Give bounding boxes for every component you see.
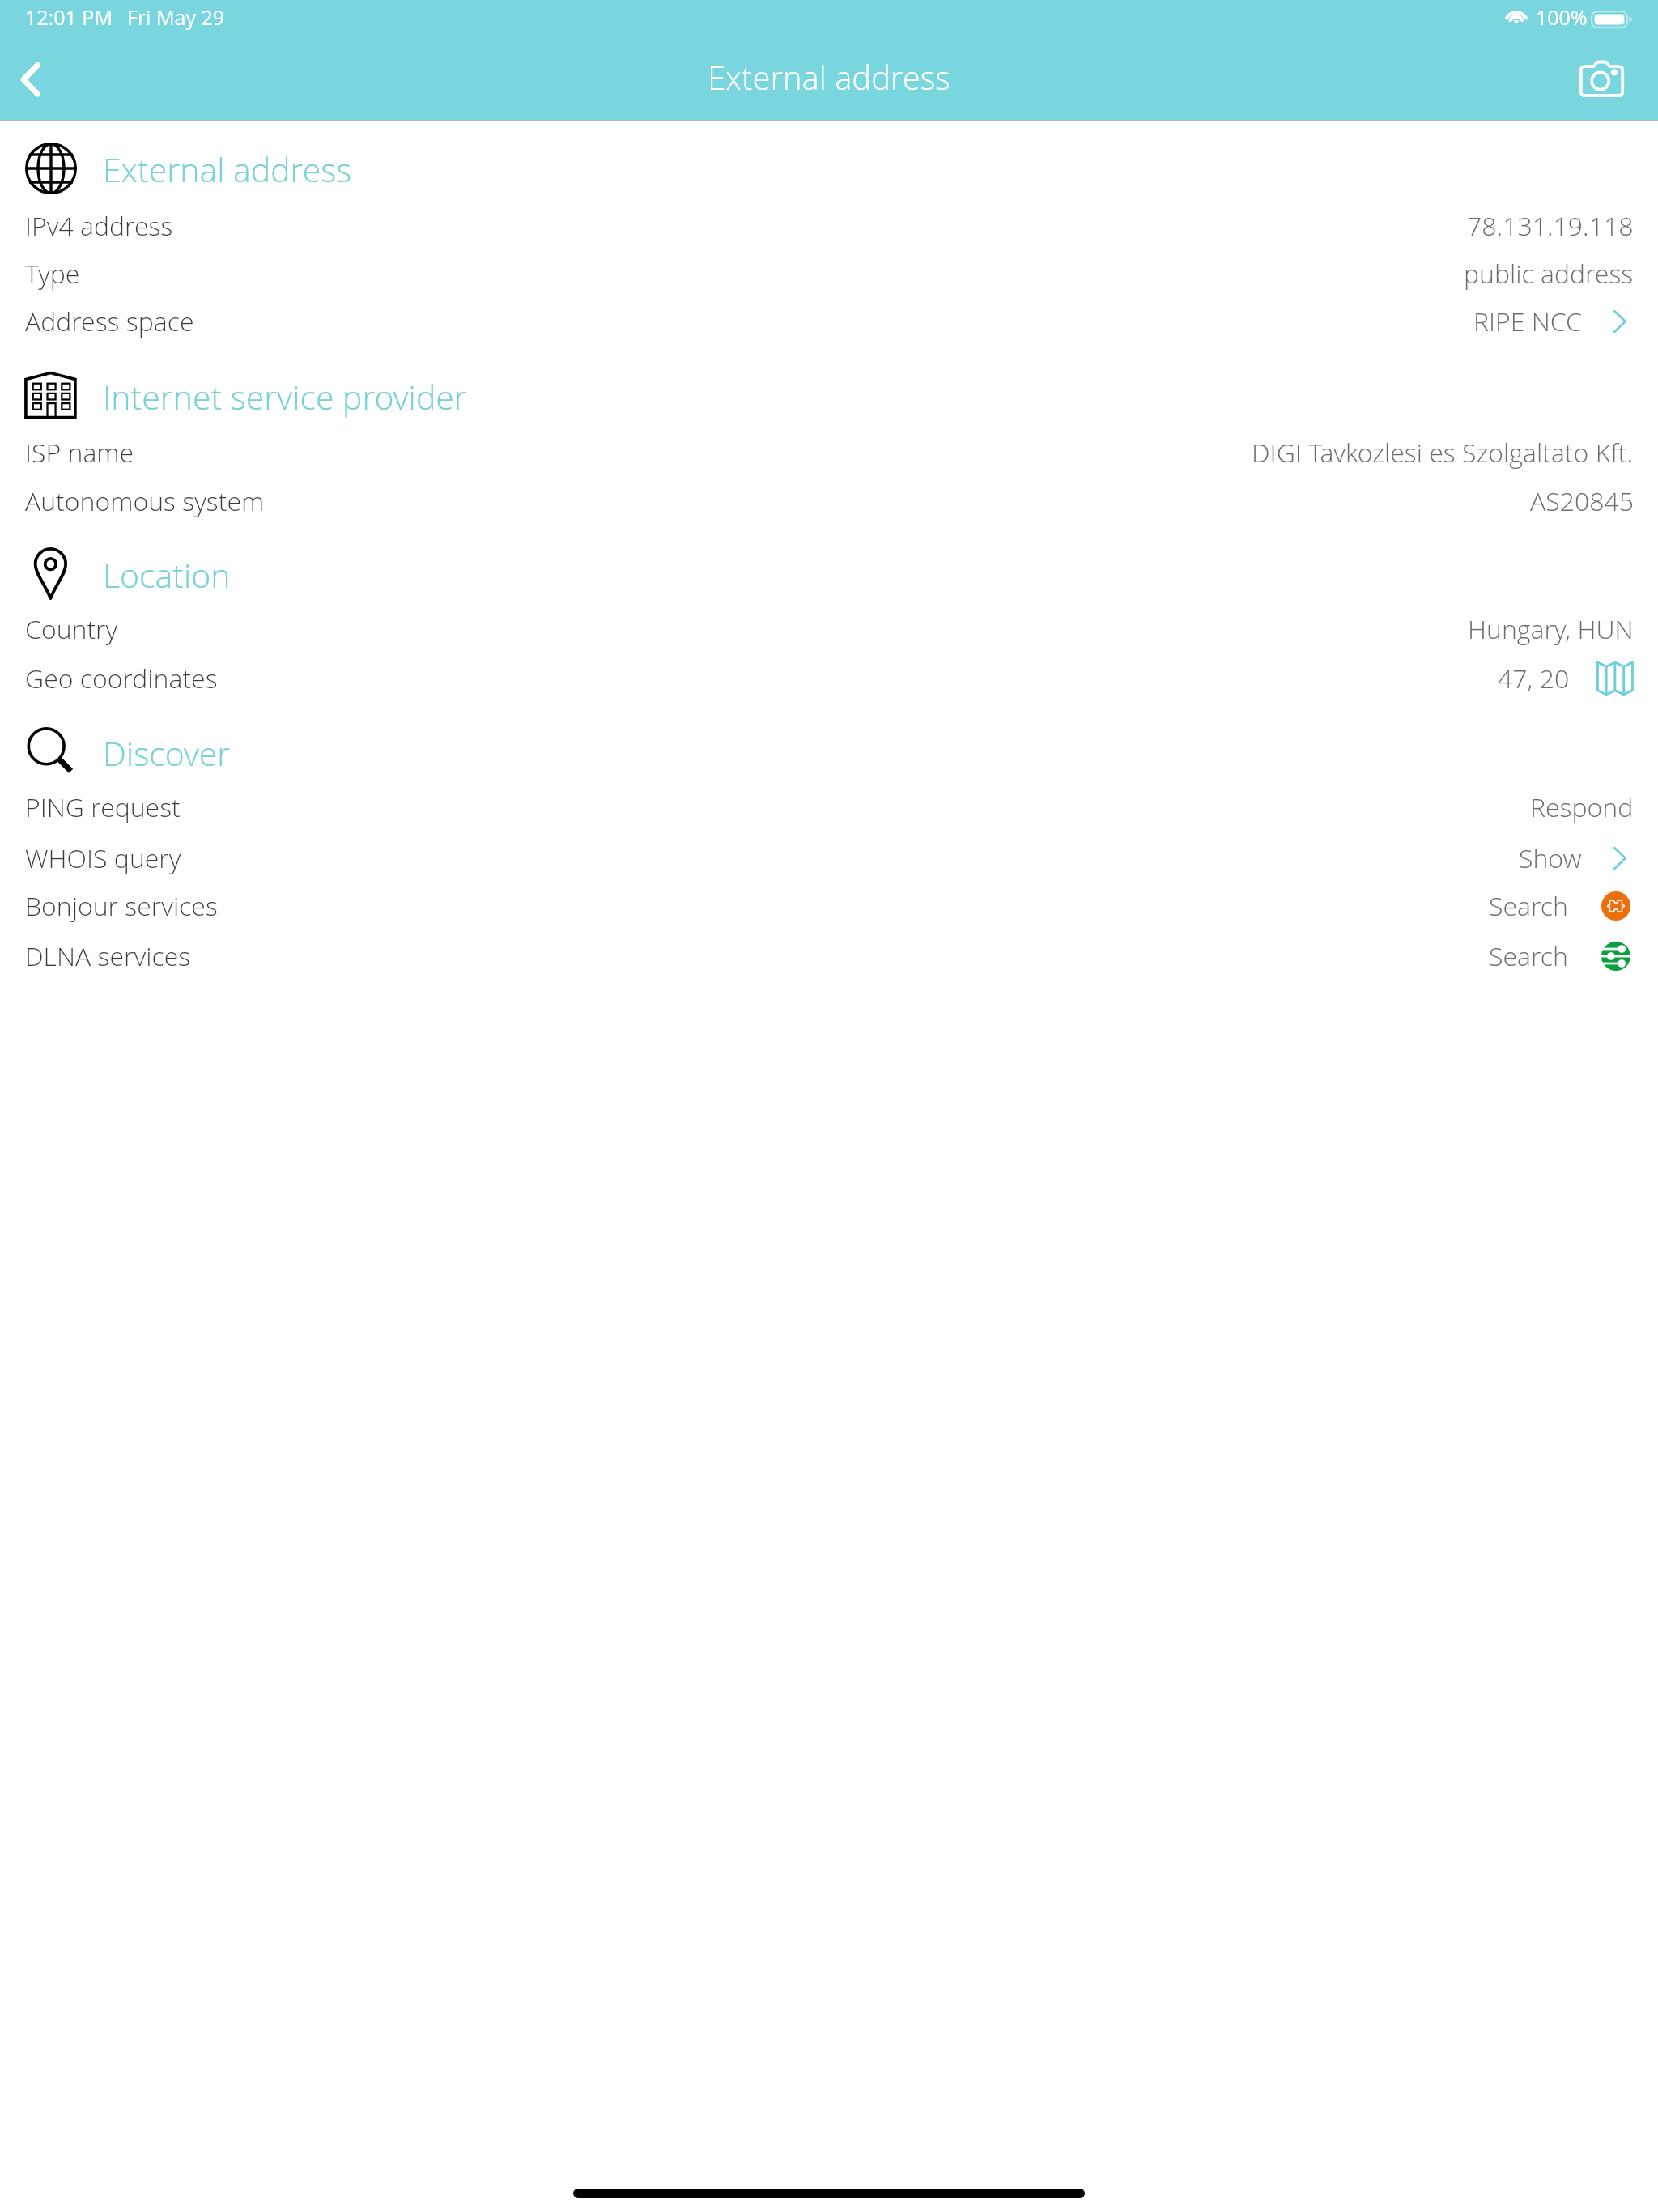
staticText: DLNA services <box>25 938 191 974</box>
staticText: Search <box>1489 888 1568 924</box>
button[interactable]: Address space <box>0 303 1658 340</box>
staticText: Search <box>1489 938 1568 974</box>
staticText: PING request <box>25 789 181 825</box>
staticText: RIPE NCC <box>1473 304 1582 339</box>
staticText: Discover <box>103 730 231 776</box>
button[interactable]: Country <box>0 610 1658 648</box>
staticText: public address <box>1464 256 1634 291</box>
staticText: Autonomous system <box>25 483 265 519</box>
staticText: 78.131.19.118 <box>1467 208 1634 244</box>
staticText: Bonjour services <box>25 888 218 924</box>
staticText: Country <box>25 611 118 647</box>
button[interactable]: PING request <box>0 789 1658 826</box>
button[interactable]: Back <box>0 44 74 118</box>
button[interactable]: WHOIS query <box>0 840 1658 877</box>
button[interactable]: Type <box>0 255 1658 292</box>
staticText: Location <box>103 552 231 598</box>
staticText: Hungary, HUN <box>1468 611 1634 647</box>
button[interactable]: ISP name <box>0 434 1658 471</box>
staticText: External address <box>0 55 1658 99</box>
staticText: External address <box>103 147 352 192</box>
button[interactable]: Geo coordinates <box>0 660 1658 697</box>
button[interactable]: Camera <box>1562 42 1640 117</box>
staticText: IPv4 address <box>25 208 173 244</box>
staticText: DIGI Tavkozlesi es Szolgaltato Kft. <box>1252 435 1634 470</box>
button[interactable]: Autonomous system <box>0 483 1658 520</box>
staticText: Internet service provider <box>103 374 467 419</box>
button[interactable]: Bonjour services <box>0 887 1658 925</box>
staticText: 12:01 PM <box>25 3 113 31</box>
button[interactable]: IPv4 address <box>0 207 1658 245</box>
staticText: WHOIS query <box>25 840 181 876</box>
staticText: 100% <box>1536 3 1588 31</box>
staticText: Respond <box>1530 789 1634 825</box>
staticText: AS20845 <box>1530 483 1634 519</box>
staticText: Address space <box>25 304 194 339</box>
staticText: Type <box>25 256 80 291</box>
staticText: Show <box>1519 840 1582 876</box>
staticText: 47, 20 <box>1498 661 1570 696</box>
staticText: ISP name <box>25 435 134 470</box>
staticText: Fri May 29 <box>127 3 225 31</box>
staticText: Geo coordinates <box>25 661 218 696</box>
button[interactable]: DLNA services <box>0 938 1658 975</box>
